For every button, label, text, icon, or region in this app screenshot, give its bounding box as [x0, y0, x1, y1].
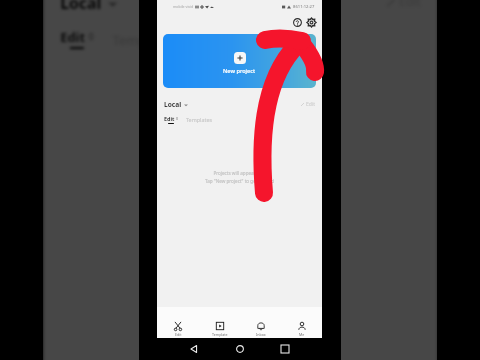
button[interactable]: Edit — [60, 28, 94, 49]
button[interactable]: Local — [164, 100, 188, 109]
staticText: Edit — [164, 115, 175, 122]
staticText: Edit — [175, 332, 182, 337]
button[interactable]: Templates — [186, 116, 212, 123]
staticText: Me — [299, 332, 305, 337]
button[interactable]: Template — [199, 307, 240, 337]
staticText: Template — [212, 332, 228, 337]
staticText: Local — [164, 100, 182, 109]
staticText: New project — [223, 67, 256, 75]
staticText: Projects will appear here — [177, 159, 306, 173]
staticText: 0 — [175, 116, 178, 121]
staticText: 8611:12:27 — [293, 4, 315, 10]
staticText: Tap "New project" to get started — [158, 178, 323, 192]
staticText: Projects will appear here — [213, 170, 267, 176]
staticText: Inbox — [256, 332, 266, 337]
button[interactable]: Settings — [304, 15, 318, 29]
button[interactable]: Inbox — [240, 307, 281, 337]
button[interactable]: Me — [281, 307, 322, 337]
button[interactable]: Recents — [276, 340, 294, 358]
button[interactable]: New project — [163, 34, 316, 88]
button[interactable]: Home — [231, 340, 249, 358]
staticText: Edit — [306, 101, 315, 108]
staticText: Edit — [60, 28, 86, 44]
button[interactable]: Edit — [157, 307, 199, 337]
staticText: Tap "New project" to get started — [205, 178, 274, 184]
button[interactable]: Help — [290, 15, 304, 29]
button[interactable]: Back — [185, 340, 203, 358]
button[interactable]: Local — [60, 0, 117, 13]
staticText: Local — [60, 0, 103, 13]
button[interactable]: Edit — [164, 115, 178, 124]
button[interactable]: Templates — [113, 30, 175, 47]
staticText: mobile vivid — [173, 4, 194, 9]
button[interactable]: Edit — [300, 101, 315, 108]
staticText: 0 — [86, 30, 94, 42]
